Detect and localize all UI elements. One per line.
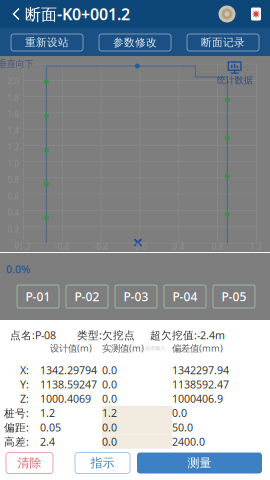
staticText: 0.4 (7, 207, 19, 218)
button[interactable]: Instrument connection (242, 0, 270, 28)
staticText: 1138.59247 (40, 377, 97, 391)
staticText: 1.2 (250, 241, 262, 252)
staticText: P-04 (172, 288, 197, 304)
staticText: 0.0 (102, 434, 117, 449)
staticText: 2.2 (7, 59, 19, 70)
staticText: 1138592.47 (172, 377, 229, 391)
staticText: 1342.29794 (40, 363, 97, 377)
staticText: 重新设站 (25, 36, 69, 49)
staticText: 垂直向下 (0, 58, 33, 70)
button[interactable]: P-02 (66, 285, 108, 308)
staticText: -0.0 (132, 241, 147, 252)
staticText: 0.0 (102, 392, 117, 406)
button[interactable]: 测量 (137, 452, 262, 473)
staticText: 类型:欠挖点 (77, 328, 135, 342)
button[interactable]: P-01 (17, 285, 59, 308)
staticText: 偏差值(mm) (172, 342, 223, 354)
staticText: 50.0 (172, 420, 193, 434)
staticText: 高差: (4, 434, 29, 449)
staticText: -1.2 (16, 241, 31, 252)
staticText: 测量 (187, 456, 211, 470)
staticText: 0.0 (102, 363, 117, 377)
staticText: 清除 (17, 456, 41, 470)
button[interactable]: Satellite status (212, 0, 242, 28)
staticText: -0.4 (93, 241, 108, 252)
staticText: 0.0 (172, 406, 187, 420)
staticText: 0.8 (211, 241, 223, 252)
staticText: 1.8 (7, 92, 19, 103)
button[interactable]: Back (0, 0, 130, 28)
staticText: 1.6 (7, 109, 19, 119)
staticText: P-01 (25, 288, 50, 304)
button[interactable]: 清除 (6, 452, 53, 473)
staticText: 1.2 (102, 406, 117, 420)
button[interactable]: P-04 (164, 285, 206, 308)
staticText: 0 (14, 240, 19, 251)
staticText: Z: (20, 392, 29, 406)
staticText: 断面记录 (201, 36, 245, 49)
staticText: 2400.0 (172, 434, 205, 449)
staticText: 0.4 (173, 241, 185, 252)
button[interactable]: 断面记录 (187, 34, 259, 51)
staticText: 超欠挖值:-2.4m (150, 328, 225, 342)
staticText: 实测值(m) (102, 342, 144, 354)
button[interactable]: 指示 (75, 452, 130, 473)
staticText: Y: (20, 377, 29, 391)
staticText: 桩号: (4, 406, 29, 420)
staticText: 点击输入 (145, 345, 165, 351)
staticText: 断面-K0+001.2 (25, 3, 130, 25)
staticText: P-05 (221, 288, 246, 304)
button[interactable]: P-03 (115, 285, 157, 308)
staticText: P-03 (123, 288, 148, 304)
button[interactable]: P-05 (213, 285, 255, 308)
staticText: 2.4 (40, 434, 55, 449)
staticText: 0.6 (7, 191, 19, 202)
button[interactable]: 参数修改 (99, 34, 171, 51)
staticText: 1.2 (40, 406, 55, 420)
staticText: 1342297.94 (172, 363, 229, 377)
staticText: 指示 (90, 456, 114, 470)
staticText: 0.0 (102, 377, 117, 391)
staticText: 1000.4069 (40, 392, 91, 406)
staticText: 参数修改 (113, 36, 157, 49)
staticText: -0.8 (55, 241, 70, 252)
staticText: 1.2 (7, 142, 19, 152)
staticText: 0.0% (6, 262, 30, 276)
staticText: 0.0 (102, 420, 117, 434)
staticText: 1.4 (7, 125, 19, 136)
staticText: 设计值(m) (50, 342, 92, 354)
staticText: 统计数据 (217, 74, 253, 86)
staticText: 0.8 (7, 175, 19, 185)
staticText: 1.0 (7, 158, 19, 169)
staticText: 0.2 (7, 224, 19, 235)
staticText: 2.0 (7, 76, 19, 86)
staticText: X: (20, 363, 29, 377)
staticText: 点名:P-08 (10, 328, 56, 342)
button[interactable]: 重新设站 (11, 34, 83, 51)
button[interactable]: 统计数据 (215, 61, 255, 86)
staticText: 偏距: (4, 420, 29, 434)
staticText: 1000406.9 (172, 392, 223, 406)
staticText: P-02 (74, 288, 99, 304)
staticText: 0.05 (40, 420, 61, 434)
